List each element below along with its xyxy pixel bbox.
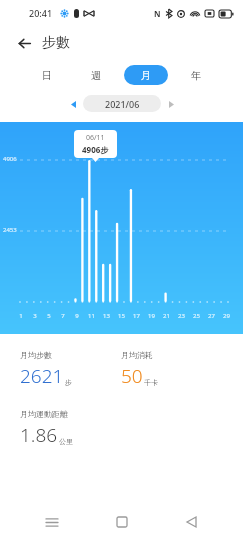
staticText: 50 bbox=[121, 363, 143, 389]
button[interactable]: Back bbox=[173, 504, 209, 540]
staticText: 月均運動距離 bbox=[20, 409, 68, 419]
staticText: 06/11 bbox=[86, 133, 105, 143]
staticText: 週 bbox=[91, 69, 101, 82]
staticText: 23 bbox=[174, 312, 189, 320]
button[interactable]: 年 bbox=[174, 65, 218, 85]
staticText: 9 bbox=[70, 312, 84, 320]
staticText: 千卡 bbox=[144, 378, 158, 387]
staticText: 公里 bbox=[59, 437, 73, 446]
button[interactable]: Back bbox=[12, 31, 36, 55]
staticText: 1 bbox=[14, 312, 28, 320]
staticText: 15 bbox=[114, 312, 129, 320]
staticText: 月 bbox=[141, 69, 151, 82]
button[interactable]: 月均運動距離 bbox=[20, 409, 121, 448]
staticText: 4906 bbox=[3, 155, 17, 163]
staticText: 19 bbox=[144, 312, 159, 320]
staticText: 29 bbox=[219, 312, 234, 320]
staticText: 月均步數 bbox=[20, 350, 52, 360]
staticText: N bbox=[154, 8, 161, 19]
staticText: 步 bbox=[65, 378, 72, 387]
button[interactable]: 週 bbox=[74, 65, 118, 85]
staticText: 年 bbox=[191, 69, 201, 82]
button[interactable]: Next month bbox=[164, 97, 178, 111]
staticText: 步數 bbox=[42, 34, 70, 52]
staticText: 月均消耗 bbox=[121, 350, 153, 360]
staticText: 27 bbox=[204, 312, 219, 320]
button[interactable]: 月均步數 bbox=[20, 350, 121, 389]
staticText: 17 bbox=[129, 312, 144, 320]
button[interactable]: Home bbox=[104, 504, 140, 540]
staticText: 日 bbox=[42, 69, 52, 82]
staticText: 3 bbox=[28, 312, 42, 320]
button[interactable]: Previous month bbox=[66, 97, 80, 111]
staticText: 13 bbox=[99, 312, 114, 320]
button[interactable]: 月 bbox=[124, 65, 168, 85]
button[interactable]: 月均消耗 bbox=[121, 350, 223, 389]
staticText: 21 bbox=[159, 312, 174, 320]
staticText: 2621 bbox=[20, 363, 64, 389]
staticText: 2453 bbox=[3, 226, 17, 234]
button[interactable]: 日 bbox=[25, 65, 68, 85]
staticText: 5 bbox=[42, 312, 56, 320]
staticText: 7 bbox=[56, 312, 70, 320]
staticText: 1.86 bbox=[20, 422, 58, 448]
staticText: 11 bbox=[84, 312, 99, 320]
staticText: 4906步 bbox=[82, 144, 109, 155]
staticText: 20:41 bbox=[29, 7, 53, 19]
button[interactable]: Recent apps bbox=[34, 504, 70, 540]
staticText: 25 bbox=[189, 312, 204, 320]
button[interactable]: 2021/06 bbox=[83, 95, 161, 112]
staticText: 2021/06 bbox=[105, 98, 140, 110]
